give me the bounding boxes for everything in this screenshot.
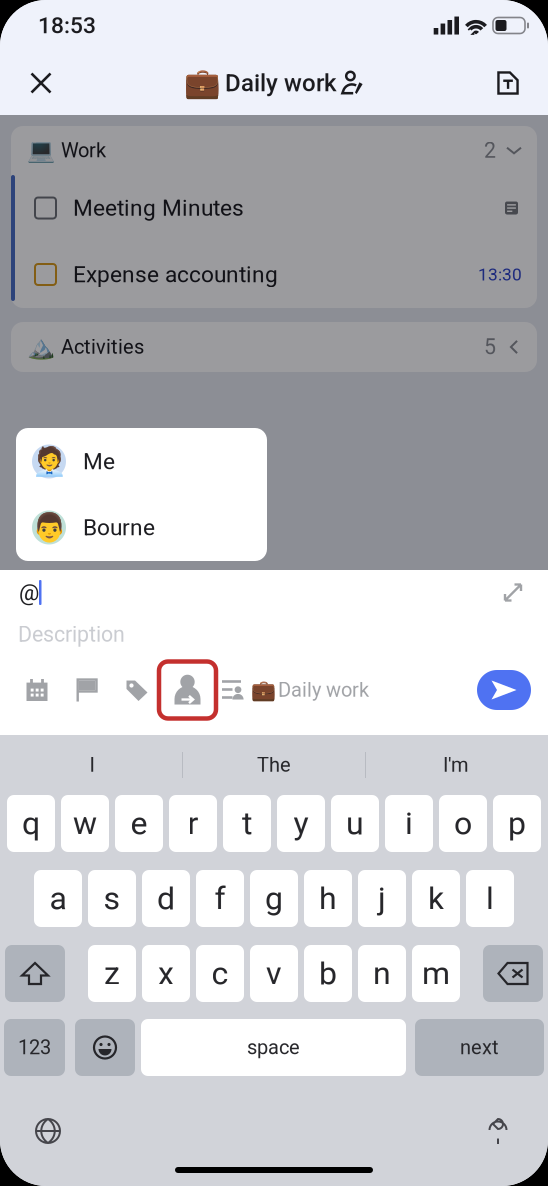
button[interactable]: next [415,1019,544,1076]
staticText: 💼 [251,678,276,702]
staticText: x [158,955,174,992]
button[interactable]: x [142,945,190,1002]
button[interactable]: a [34,870,82,927]
staticText: a [49,880,66,917]
staticText: The [257,753,291,777]
staticText: b [319,955,337,992]
staticText: i [405,805,413,842]
staticText: c [211,955,228,992]
button[interactable]: b [304,945,352,1002]
staticText: k [428,880,444,917]
button[interactable]: v [250,945,298,1002]
button[interactable]: d [142,870,190,927]
staticText: 2 [484,138,496,163]
staticText: 💼 [184,66,221,100]
button[interactable]: t [223,795,271,852]
staticText: s [103,880,120,917]
button[interactable]: Tag [117,668,157,712]
button[interactable]: The [183,743,365,787]
staticText: 💻 [27,137,55,164]
button[interactable]: Expense accounting [15,241,537,308]
staticText: 🏔 [27,334,55,360]
button[interactable]: Meeting Minutes [15,175,537,241]
button[interactable]: I'm [365,743,547,787]
staticText: p [508,805,526,842]
staticText: d [157,880,175,917]
staticText: I [89,753,94,777]
button[interactable]: Expand [496,575,530,609]
staticText: Work [61,139,106,162]
button[interactable]: Text style [483,56,533,110]
staticText: Activities [61,335,144,359]
button[interactable]: Assign [159,661,216,718]
staticText: h [319,880,337,917]
staticText: 🧑‍💼 [31,445,66,478]
staticText: next [460,1036,499,1059]
button[interactable]: Send [477,670,531,710]
button[interactable]: Emoji [75,1019,135,1076]
staticText: Description [18,622,125,647]
staticText: Meeting Minutes [73,195,244,221]
button[interactable]: u [331,795,379,852]
staticText: 13:30 [478,264,522,285]
button[interactable]: y [277,795,325,852]
button[interactable]: f [196,870,244,927]
button[interactable]: l [466,870,514,927]
staticText: f [214,880,225,917]
button[interactable]: w [61,795,109,852]
button[interactable]: Switch keyboard [18,1105,78,1157]
button[interactable]: Close [16,56,66,110]
staticText: 5 [484,334,496,359]
staticText: space [247,1036,300,1059]
staticText: 18:53 [38,12,96,39]
button[interactable]: m [412,945,460,1002]
button[interactable]: g [250,870,298,927]
button[interactable]: 123 [4,1019,65,1076]
button[interactable]: space [141,1019,406,1076]
staticText: u [346,805,364,842]
staticText: m [422,955,450,992]
staticText: Me [83,448,115,475]
button[interactable]: c [196,945,244,1002]
button[interactable]: e [115,795,163,852]
staticText: I'm [443,753,469,777]
button[interactable]: k [412,870,460,927]
button[interactable]: r [169,795,217,852]
button[interactable]: z [88,945,136,1002]
button[interactable]: n [358,945,406,1002]
button[interactable]: 💼 [222,667,369,713]
button[interactable]: Date [17,668,57,712]
staticText: t [242,805,252,842]
staticText: Daily work [278,678,369,702]
button[interactable]: j [358,870,406,927]
button[interactable]: q [7,795,55,852]
staticText: Expense accounting [73,261,278,288]
staticText: q [22,805,40,842]
button[interactable]: i [385,795,433,852]
button[interactable]: Delete [483,945,543,1002]
staticText: n [373,955,391,992]
staticText: w [73,805,97,842]
staticText: v [266,955,282,992]
staticText: o [454,805,472,842]
button[interactable]: 🏔 [11,322,537,372]
staticText: Bourne [83,514,155,541]
button[interactable]: Dictate [468,1105,528,1157]
staticText: 👨 [31,511,66,544]
button[interactable]: s [88,870,136,927]
button[interactable]: h [304,870,352,927]
button[interactable]: I [1,743,183,787]
button[interactable]: 🧑‍💼 [16,428,267,494]
button[interactable]: 💻 [11,126,537,175]
staticText: e [130,805,147,842]
button[interactable]: o [439,795,487,852]
button[interactable]: Shift [5,945,65,1002]
button[interactable]: Priority [67,668,107,712]
button[interactable]: p [493,795,541,852]
staticText: y [293,805,308,842]
staticText: j [378,880,386,917]
staticText: g [265,880,283,917]
button[interactable]: 👨 [16,494,267,560]
staticText: l [486,880,494,917]
staticText: r [187,805,198,842]
